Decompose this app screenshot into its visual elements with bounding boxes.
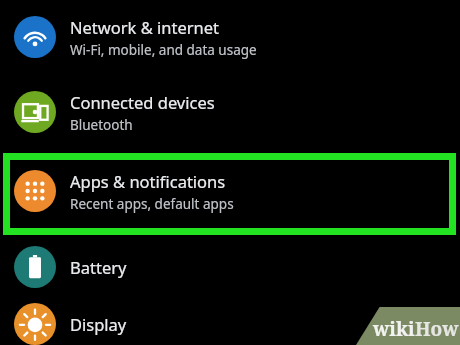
staticText: Network & internet bbox=[70, 16, 220, 38]
staticText: Wi-Fi, mobile, and data usage bbox=[70, 41, 257, 59]
button[interactable]: Battery bbox=[0, 232, 460, 302]
button[interactable]: Apps & notifications bbox=[0, 150, 460, 232]
staticText: Bluetooth bbox=[70, 116, 133, 134]
staticText: Apps & notifications bbox=[70, 170, 226, 192]
staticText: Recent apps, default apps bbox=[70, 195, 234, 213]
staticText: wiki bbox=[373, 316, 415, 342]
button[interactable]: Connected devices bbox=[0, 74, 460, 150]
staticText: Display bbox=[70, 313, 127, 335]
button[interactable]: Network & internet bbox=[0, 0, 460, 74]
staticText: Connected devices bbox=[70, 91, 215, 113]
button[interactable]: Display bbox=[0, 302, 460, 345]
staticText: How bbox=[415, 316, 459, 342]
staticText: Battery bbox=[70, 256, 127, 278]
